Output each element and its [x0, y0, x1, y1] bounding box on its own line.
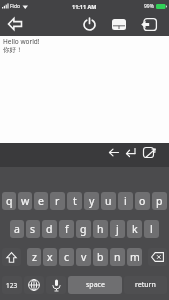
- button[interactable]: d: [42, 220, 57, 238]
- button[interactable]: u: [101, 192, 116, 210]
- staticText: Fido: [10, 3, 20, 10]
- staticText: g: [80, 222, 87, 236]
- button[interactable]: i: [118, 192, 133, 210]
- staticText: 11:11 AM: [72, 3, 97, 10]
- staticText: w: [21, 194, 30, 208]
- staticText: v: [81, 250, 87, 264]
- staticText: o: [139, 194, 146, 208]
- staticText: l: [150, 222, 153, 236]
- staticText: u: [105, 194, 112, 208]
- staticText: p: [156, 194, 163, 208]
- button[interactable]: return: [124, 276, 167, 294]
- button[interactable]: y: [84, 192, 99, 210]
- staticText: q: [6, 194, 13, 208]
- button[interactable]: z: [27, 248, 41, 266]
- button[interactable]: x: [43, 248, 57, 266]
- button[interactable]: 123: [2, 276, 22, 294]
- staticText: 99%: [144, 3, 154, 10]
- button[interactable]: [109, 14, 129, 34]
- button[interactable]: space: [68, 276, 122, 294]
- button[interactable]: a: [10, 220, 24, 238]
- staticText: j: [116, 222, 119, 236]
- button[interactable]: [79, 14, 99, 34]
- staticText: d: [46, 222, 53, 236]
- button[interactable]: s: [26, 220, 40, 238]
- button[interactable]: [107, 145, 121, 159]
- button[interactable]: [24, 276, 44, 294]
- button[interactable]: b: [93, 248, 108, 266]
- staticText: s: [30, 222, 36, 236]
- staticText: c: [64, 250, 70, 264]
- staticText: y: [89, 194, 95, 208]
- staticText: return: [135, 280, 156, 290]
- button[interactable]: o: [135, 192, 150, 210]
- button[interactable]: p: [152, 192, 167, 210]
- button[interactable]: [46, 276, 66, 294]
- button[interactable]: [2, 248, 21, 266]
- staticText: r: [55, 194, 60, 208]
- button[interactable]: [141, 145, 157, 159]
- staticText: x: [47, 250, 53, 264]
- button[interactable]: l: [144, 220, 159, 238]
- button[interactable]: e: [34, 192, 48, 210]
- button[interactable]: t: [67, 192, 82, 210]
- button[interactable]: [5, 15, 25, 33]
- button[interactable]: [139, 14, 159, 34]
- button[interactable]: q: [2, 192, 16, 210]
- button[interactable]: [124, 145, 138, 159]
- staticText: e: [38, 194, 44, 208]
- staticText: n: [114, 250, 121, 264]
- button[interactable]: w: [18, 192, 32, 210]
- staticText: a: [14, 222, 20, 236]
- button[interactable]: [148, 248, 167, 266]
- staticText: space: [86, 280, 105, 290]
- button[interactable]: m: [127, 248, 142, 266]
- button[interactable]: k: [127, 220, 142, 238]
- staticText: m: [130, 250, 140, 264]
- staticText: h: [97, 222, 104, 236]
- staticText: k: [132, 222, 138, 236]
- staticText: i: [124, 194, 127, 208]
- button[interactable]: j: [110, 220, 125, 238]
- button[interactable]: g: [76, 220, 91, 238]
- staticText: f: [65, 222, 69, 236]
- staticText: b: [97, 250, 104, 264]
- button[interactable]: f: [59, 220, 74, 238]
- button[interactable]: v: [76, 248, 91, 266]
- staticText: t: [73, 194, 77, 208]
- staticText: Hello world!: [3, 37, 40, 46]
- button[interactable]: c: [59, 248, 74, 266]
- staticText: z: [32, 250, 37, 264]
- button[interactable]: r: [50, 192, 65, 210]
- staticText: 123: [6, 281, 18, 290]
- button[interactable]: h: [93, 220, 108, 238]
- staticText: 你好！: [3, 46, 23, 54]
- button[interactable]: n: [110, 248, 125, 266]
